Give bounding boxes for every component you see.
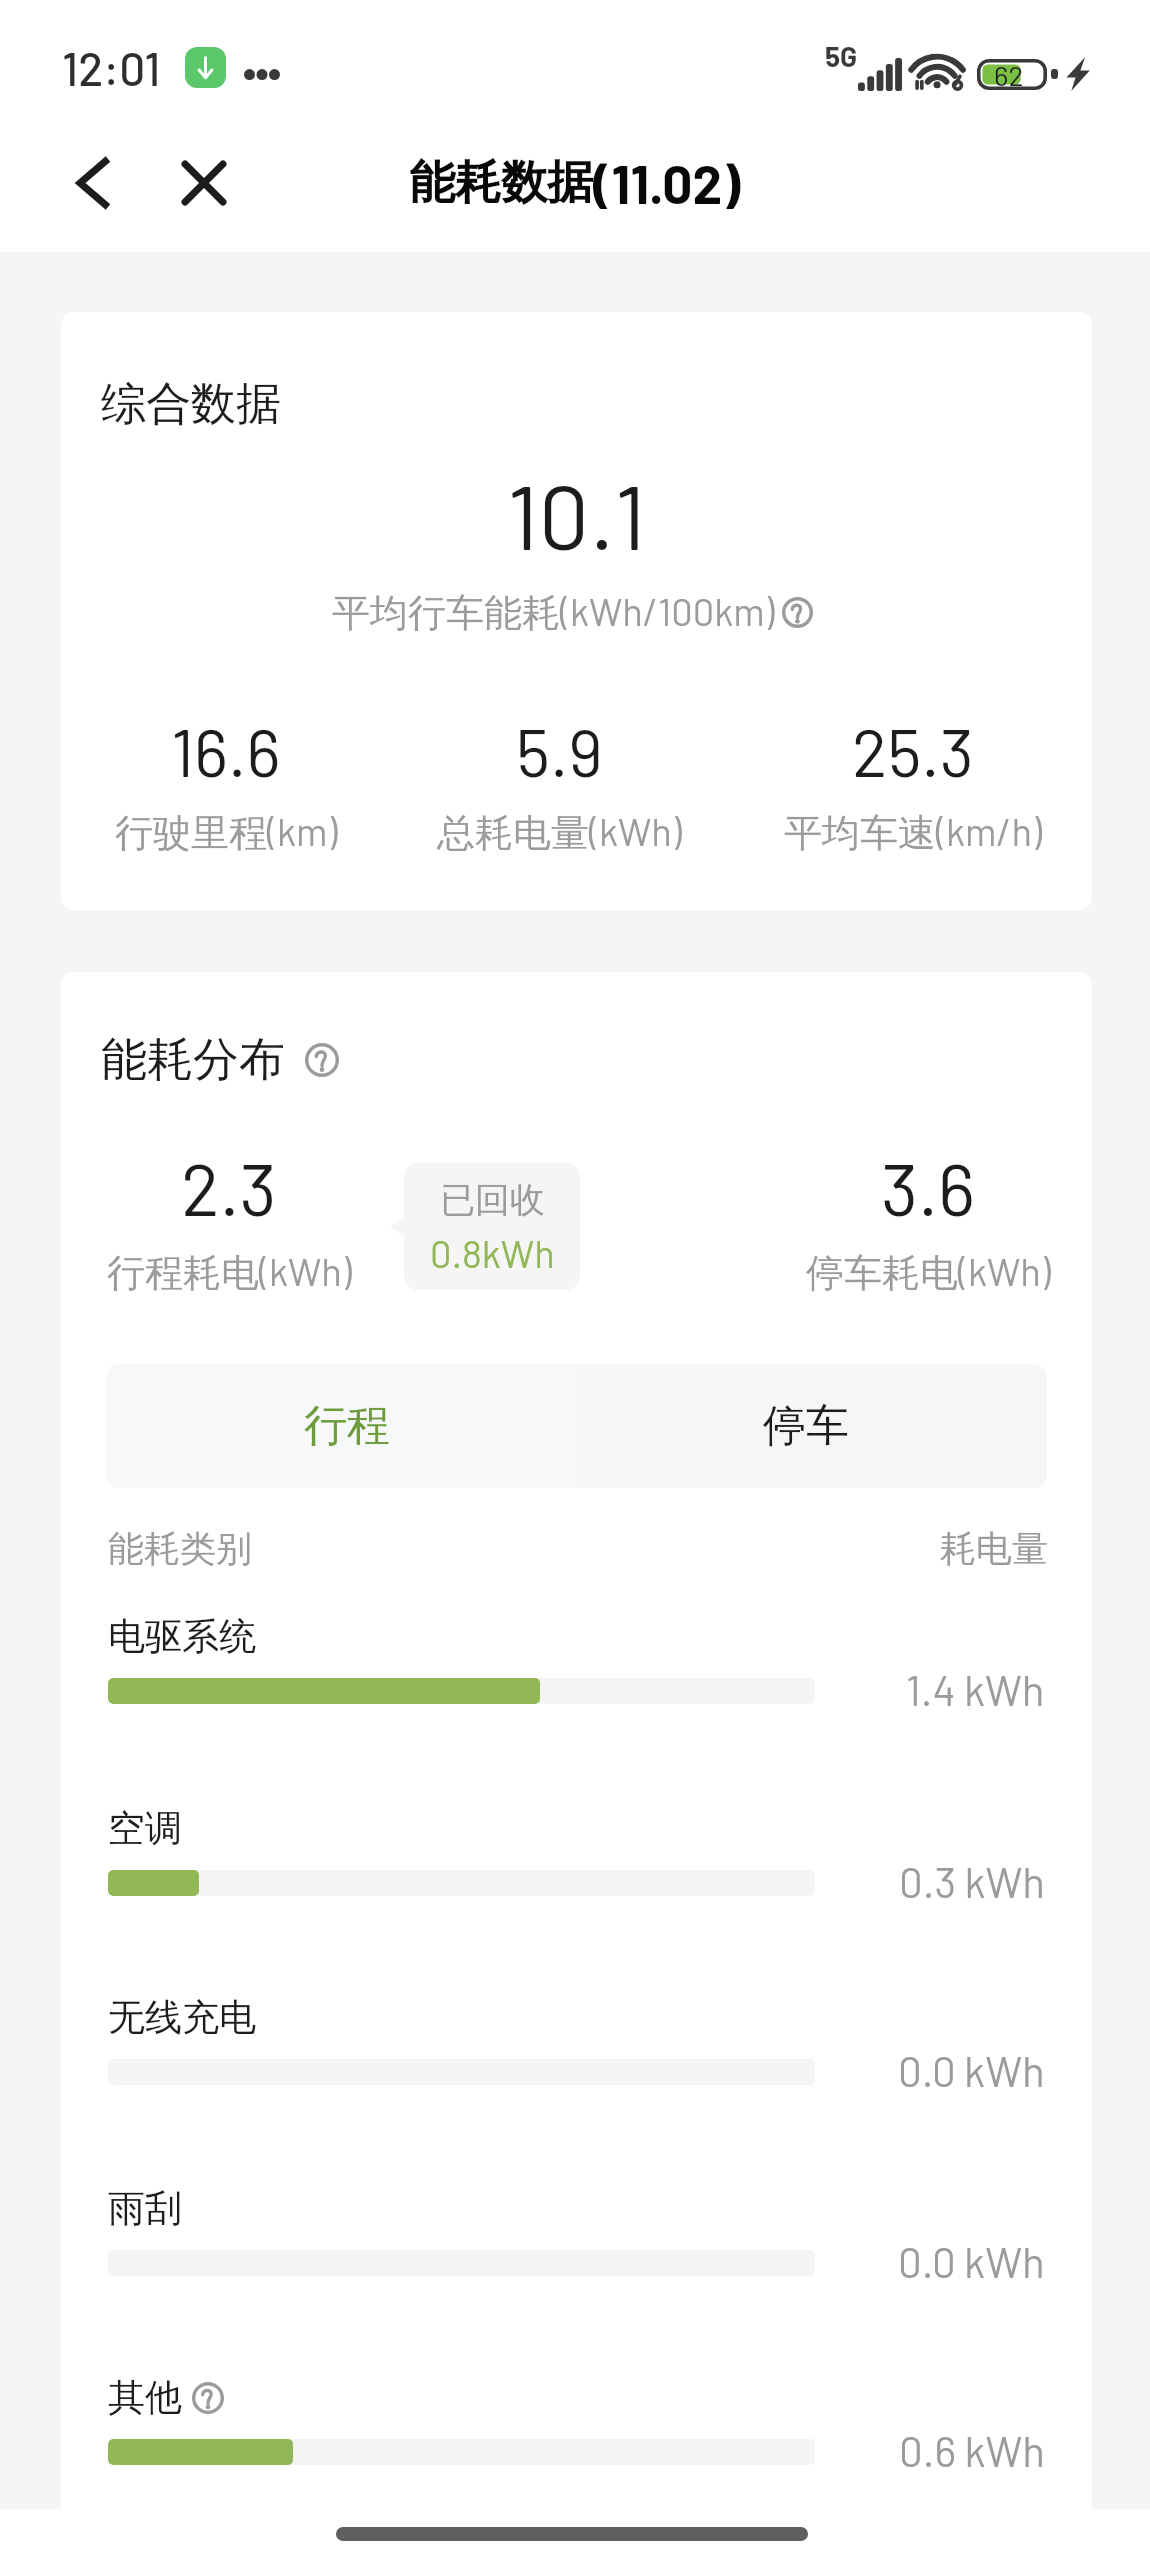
staticText: 62 [994,58,1024,89]
staticText: 行驶里程(km) [115,808,338,857]
staticText: 10.1 [61,460,1092,568]
button[interactable]: 电驱系统 [108,1598,1048,1724]
staticText: 停车 [763,1399,849,1453]
staticText: 0.3 kWh [899,1856,1045,1906]
staticText: 平均车速(km/h) [784,808,1042,857]
button[interactable]: 停车 [576,1364,1047,1488]
button[interactable]: Close [162,141,246,225]
staticText: 25.3 [852,711,974,790]
staticText: (11.02) [593,151,741,215]
staticText: 其他 [108,2374,182,2421]
staticText: 0.6 kWh [899,2425,1045,2475]
button[interactable]: About energy distribution [305,1043,339,1077]
staticText: 平均行车能耗(kWh/100km) [332,588,775,637]
staticText: 0.8kWh [430,1230,555,1276]
button[interactable]: 无线充电 [108,1979,1048,2105]
staticText: 无线充电 [108,1994,256,2041]
staticText: 已回收 [440,1178,545,1222]
staticText: 3.6 [881,1144,976,1230]
staticText: 2.3 [181,1144,277,1230]
staticText: 综合数据 [101,376,281,433]
staticText: 16.6 [171,711,281,790]
button[interactable]: 其他 [108,2359,1048,2485]
staticText: 0.0 kWh [898,2236,1045,2286]
staticText: 总耗电量(kWh) [437,808,682,857]
button[interactable]: 雨刮 [108,2170,1048,2296]
staticText: 5.9 [516,711,603,790]
staticText: 停车耗电(kWh) [806,1248,1051,1297]
staticText: 行程 [304,1399,390,1453]
staticText: 能耗数据 [409,154,593,212]
staticText: 行程耗电(kWh) [107,1248,352,1297]
staticText: 能耗分布 [101,1031,285,1089]
staticText: 1.4 kWh [906,1664,1045,1714]
staticText: 雨刮 [108,2185,182,2232]
staticText: 12:01 [62,40,161,95]
button[interactable]: 空调 [108,1790,1048,1916]
staticText: 耗电量 [940,1526,1048,1571]
button[interactable]: 行程 [106,1364,576,1488]
button[interactable]: Back [52,141,136,225]
staticText: 空调 [108,1805,182,1852]
button[interactable]: About average driving consumption [782,597,813,628]
button[interactable]: About other consumption [192,2382,224,2414]
staticText: 0.0 kWh [898,2045,1045,2095]
staticText: 电驱系统 [108,1613,256,1660]
staticText: 5G [825,39,858,73]
staticText: 能耗类别 [108,1526,252,1571]
